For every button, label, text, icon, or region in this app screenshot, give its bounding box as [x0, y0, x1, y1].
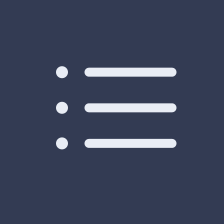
button[interactable]: List item: [56, 102, 176, 114]
button[interactable]: List item: [56, 66, 176, 78]
button[interactable]: List item: [56, 137, 176, 149]
